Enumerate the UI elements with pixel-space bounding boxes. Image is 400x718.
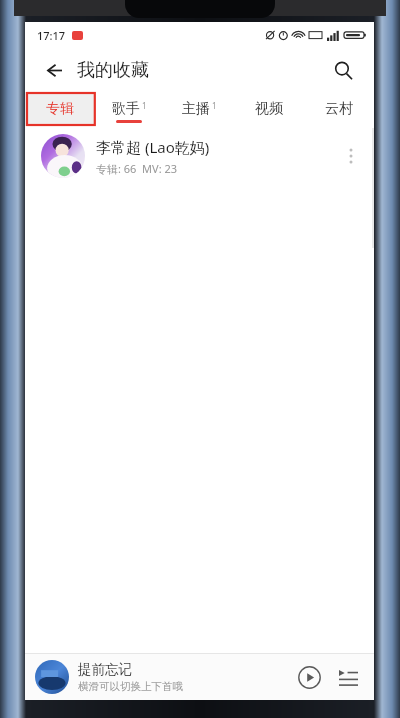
button[interactable]: More options [338,136,364,176]
staticText: 1 [142,100,147,111]
button[interactable]: 专辑 [25,92,94,126]
staticText: 主播 [182,100,210,118]
button[interactable]: 云村 [304,92,374,126]
staticText: 我的收藏 [77,59,149,82]
staticText: 云村 [325,100,353,118]
staticText: 歌手 [112,100,140,118]
staticText: 李常超 (Lao乾妈) [96,137,210,157]
staticText: 横滑可以切换上下首哦 [78,680,183,693]
staticText: 17:17 [37,28,66,43]
staticText: 视频 [255,100,283,118]
staticText: 1 [212,100,217,111]
staticText: 专辑: 66 MV: 23 [96,161,178,176]
button[interactable]: Playlist [332,661,364,693]
button[interactable]: 提前忘记 [25,654,374,700]
staticText: 提前忘记 [78,661,132,678]
button[interactable]: 歌手 [94,92,164,126]
button[interactable]: 主播 [164,92,234,126]
button[interactable]: Search [326,53,360,87]
button[interactable]: Back [37,54,69,86]
button[interactable]: Play [292,660,326,694]
staticText: 专辑 [46,100,74,118]
button[interactable]: 视频 [234,92,304,126]
button[interactable]: 李常超 (Lao乾妈) [25,126,374,186]
